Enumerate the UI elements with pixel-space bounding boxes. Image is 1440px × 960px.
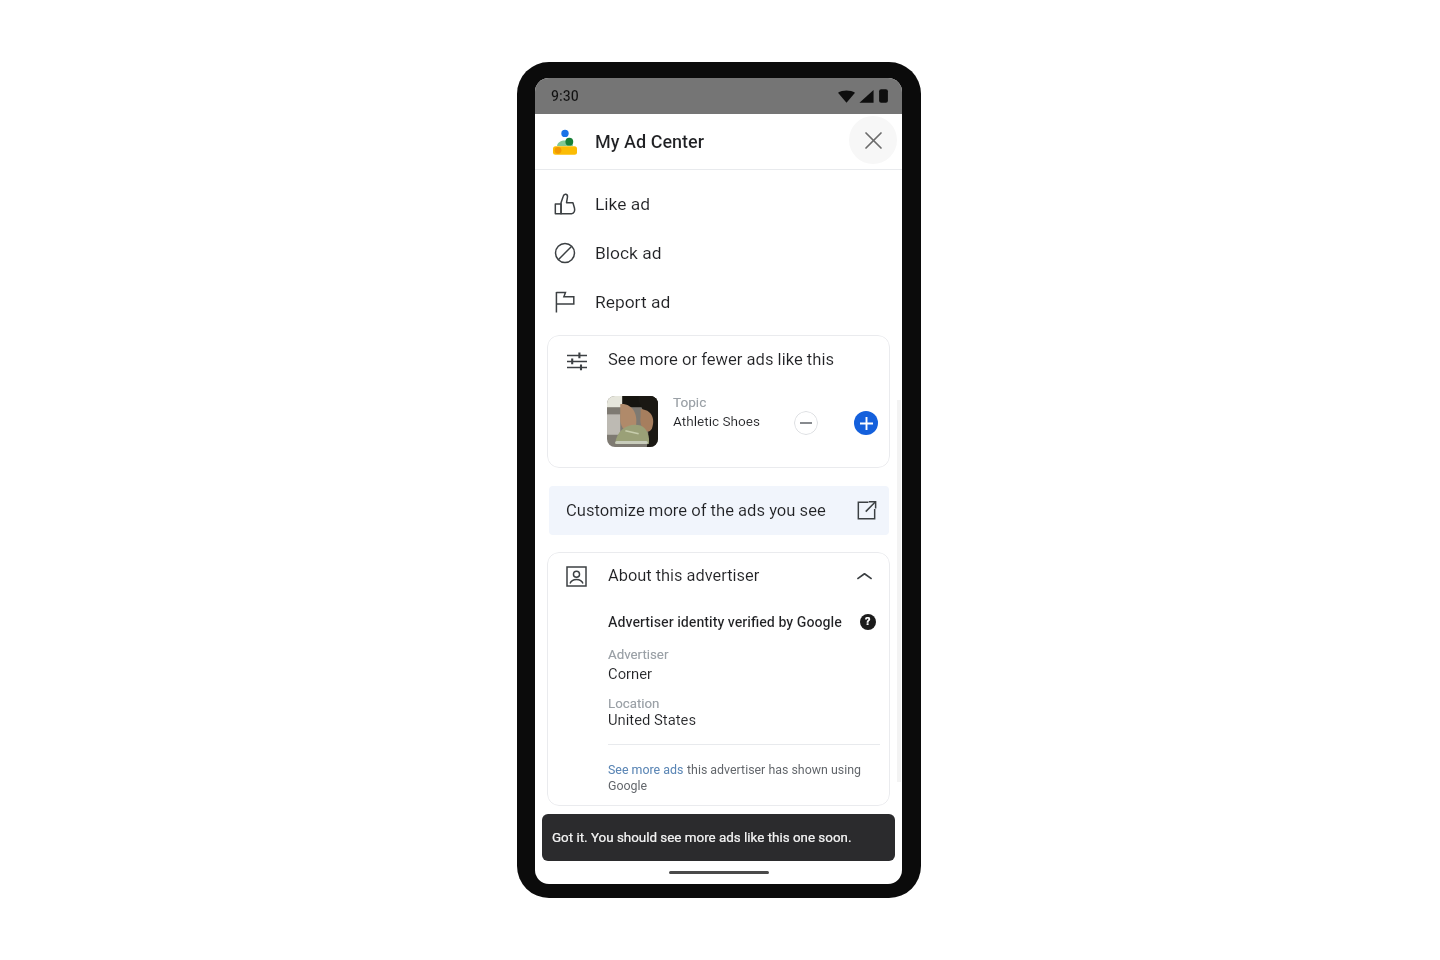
- staticText: My Ad Center: [595, 131, 705, 152]
- staticText: United States: [608, 711, 697, 728]
- staticText: About this advertiser: [608, 566, 760, 585]
- staticText: Report ad: [595, 292, 671, 312]
- staticText: this advertiser has shown using: [687, 762, 861, 777]
- button[interactable]: Got it. You should see more ads like thi…: [542, 814, 895, 861]
- staticText: Customize more of the ads you see: [566, 501, 826, 520]
- button[interactable]: Close: [849, 116, 897, 164]
- staticText: Corner: [608, 665, 653, 682]
- button[interactable]: See more ads: [608, 762, 684, 777]
- button[interactable]: Fewer ads like this: [794, 411, 818, 435]
- staticText: Athletic Shoes: [673, 413, 760, 429]
- button[interactable]: Help: [860, 614, 876, 630]
- staticText: ?: [865, 615, 871, 628]
- staticText: Advertiser: [608, 647, 669, 663]
- staticText: Advertiser identity verified by Google: [608, 614, 842, 631]
- staticText: Block ad: [595, 243, 662, 263]
- button[interactable]: More ads like this: [854, 411, 878, 435]
- staticText: Topic: [673, 394, 707, 410]
- staticText: See more or fewer ads like this: [608, 350, 835, 369]
- staticText: 9:30: [551, 88, 579, 104]
- button[interactable]: About this advertiser: [547, 552, 890, 599]
- button[interactable]: Customize more of the ads you see: [549, 486, 889, 535]
- button[interactable]: Report ad: [535, 277, 902, 326]
- staticText: Location: [608, 696, 660, 712]
- staticText: Like ad: [595, 194, 651, 214]
- staticText: Got it. You should see more ads like thi…: [552, 830, 852, 846]
- button[interactable]: Like ad: [535, 179, 902, 228]
- button[interactable]: Block ad: [535, 228, 902, 277]
- staticText: Google: [608, 778, 648, 793]
